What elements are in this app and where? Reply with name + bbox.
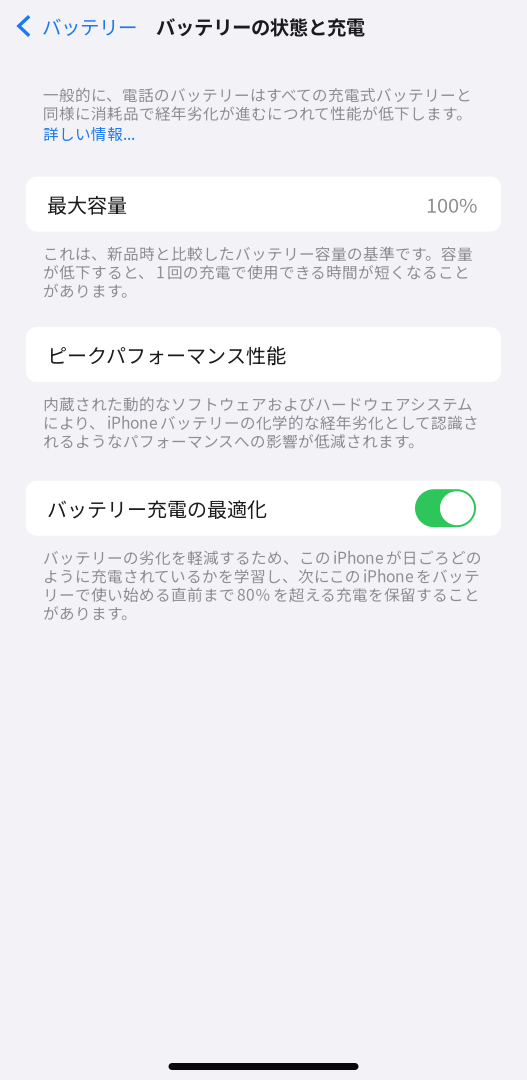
staticText: バッテリー充電の最適化 <box>47 494 267 523</box>
staticText: 詳しい情報... <box>43 124 135 142</box>
button[interactable]: バッテリーの状態と充電 <box>137 5 365 47</box>
staticText: 一般的に、電話のバッテリーはすべての充電式バッテリーと同様に消耗品で経年劣化が進… <box>43 85 472 122</box>
staticText: 最大容量 <box>47 190 127 219</box>
staticText: バッテリー <box>42 12 137 40</box>
staticText: これは、新品時と比較したバッテリー容量の基準です。容量が低下すると、 1 回の充… <box>43 244 473 299</box>
staticText: 100% <box>426 190 477 219</box>
button[interactable]: 詳しい情報... <box>43 124 135 142</box>
staticText: ピークパフォーマンス性能 <box>47 340 286 369</box>
staticText: バッテリーの状態と充電 <box>156 12 365 40</box>
button[interactable]: バッテリー <box>0 5 137 47</box>
button[interactable]: バッテリー充電の最適化 <box>415 489 476 527</box>
staticText: バッテリーの劣化を軽減するため、この iPhone が日ごろどのように充電されて… <box>43 548 482 622</box>
staticText: 内蔵された動的なソフトウェアおよびハードウェアシステムにより、 iPhone バ… <box>43 394 479 450</box>
